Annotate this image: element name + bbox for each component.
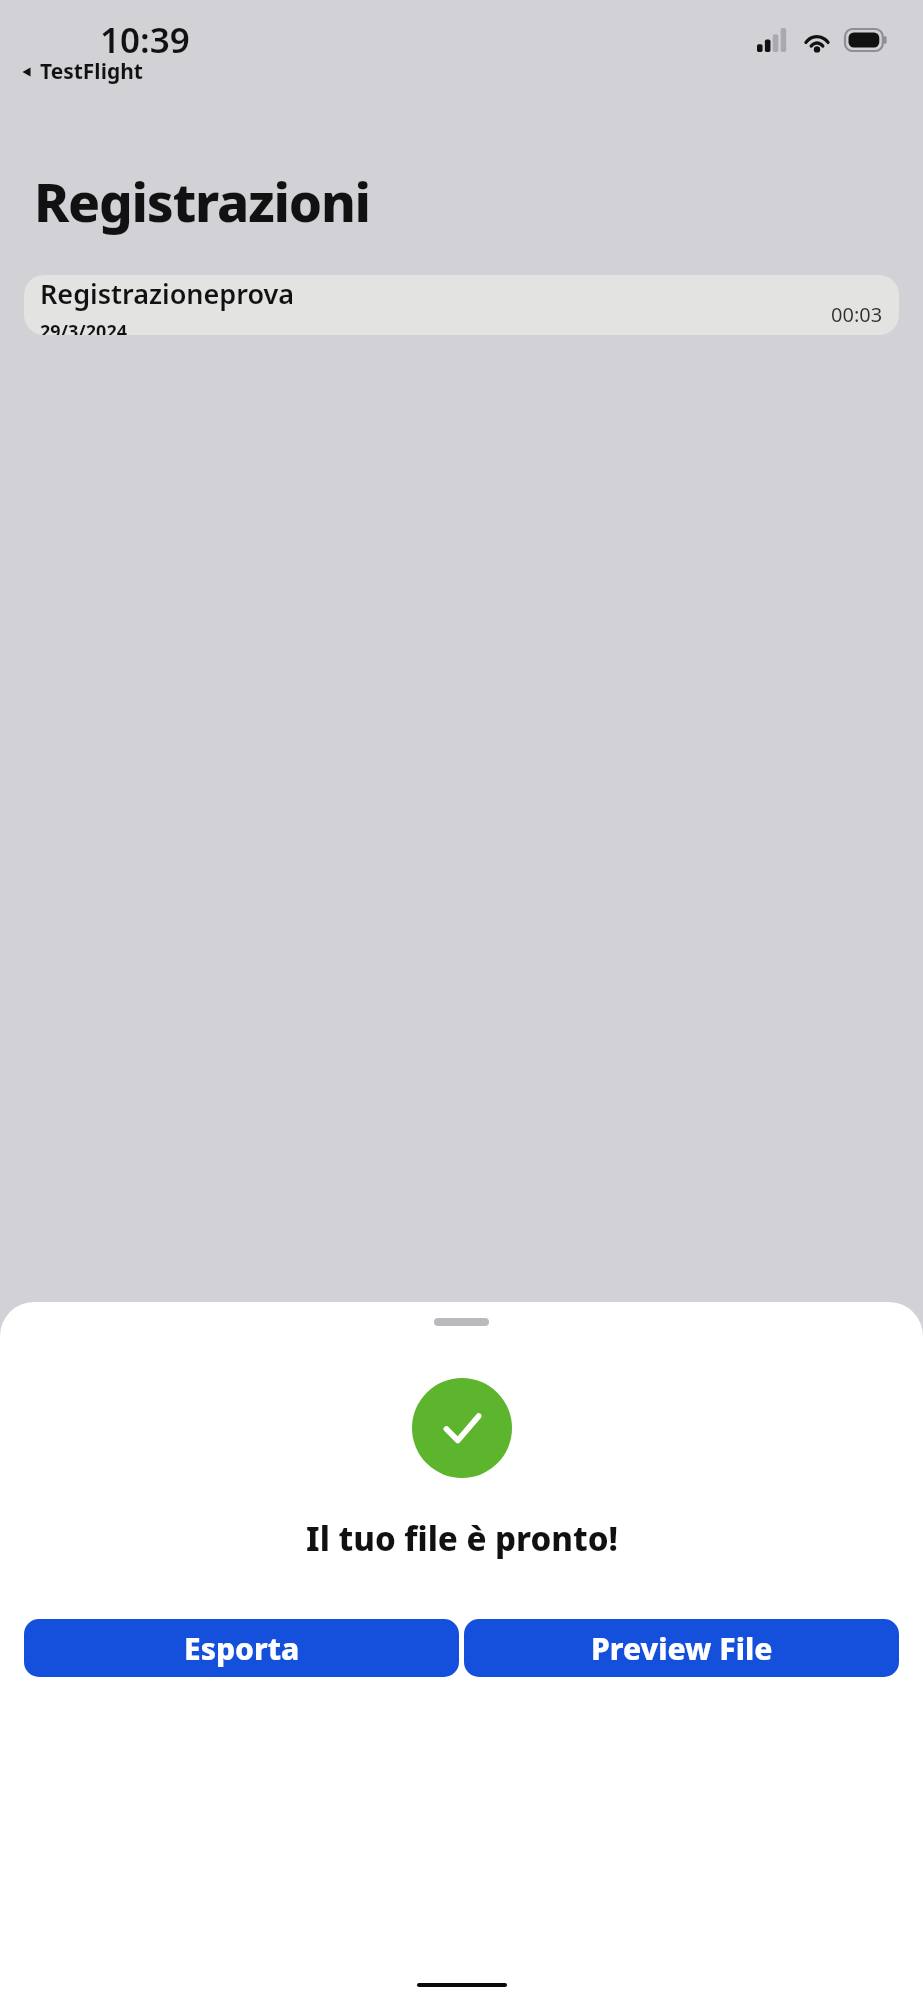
button[interactable]: Esporta [24, 1619, 459, 1677]
staticText: Preview File [591, 1628, 773, 1669]
staticText: TestFlight [40, 57, 143, 86]
staticText: Il tuo file è pronto! [306, 1516, 618, 1561]
staticText: Esporta [184, 1628, 300, 1669]
button[interactable]: Preview File [464, 1619, 899, 1677]
staticText: 00:03 [831, 301, 883, 328]
staticText: 10:39 [100, 16, 190, 64]
button[interactable]: Registrazioneprova [24, 275, 899, 335]
staticText: Registrazioneprova [40, 275, 295, 312]
staticText: Registrazioni [34, 165, 370, 237]
staticText: 29/3/2024 [40, 319, 128, 335]
